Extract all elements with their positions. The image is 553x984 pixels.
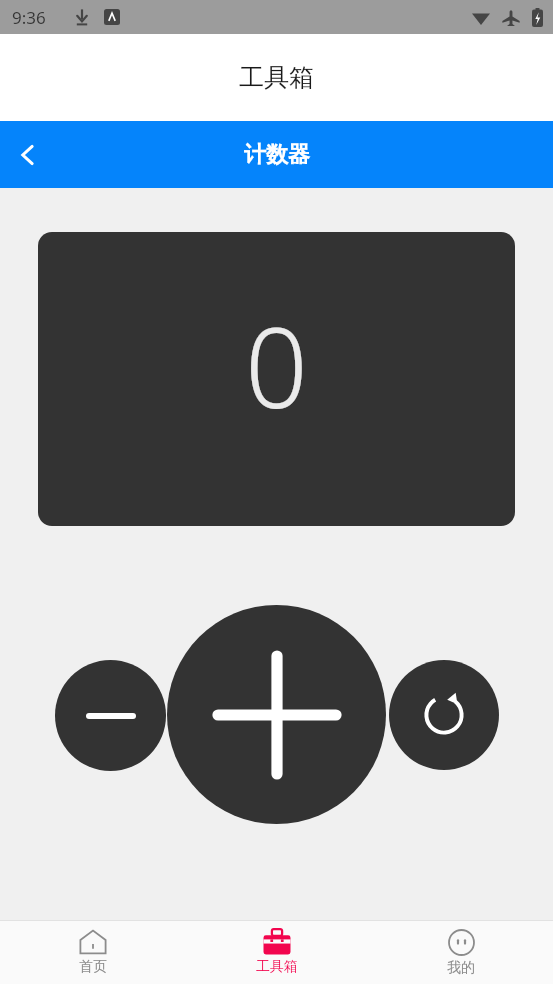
staticText: 0 [245, 290, 308, 440]
button[interactable]: 增加 [167, 605, 386, 824]
staticText: 计数器 [244, 141, 310, 169]
staticText: 工具箱 [256, 958, 298, 976]
button[interactable]: 首页 [0, 921, 185, 984]
staticText: 我的 [447, 959, 475, 977]
button[interactable]: 减少 [55, 660, 166, 771]
staticText: 首页 [79, 958, 107, 976]
button[interactable]: 工具箱 [185, 921, 369, 984]
staticText: 工具箱 [239, 62, 314, 93]
button[interactable]: 重置 [389, 660, 499, 770]
button[interactable]: 我的 [369, 921, 553, 984]
button[interactable]: 返回 [0, 127, 56, 183]
staticText: 9:36 [12, 6, 46, 29]
